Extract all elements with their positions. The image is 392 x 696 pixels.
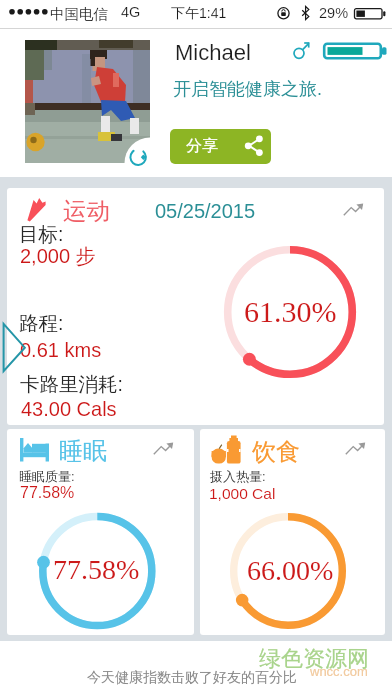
- staticText: 卡路里消耗:: [20, 372, 123, 397]
- staticText: 77.58%: [20, 484, 75, 502]
- staticText: 中国电信: [50, 5, 108, 23]
- staticText: 睡眠: [59, 436, 107, 466]
- staticText: 43.00 Cals: [21, 398, 117, 420]
- staticText: 绿色资源网: [259, 645, 369, 673]
- staticText: Michael: [175, 40, 251, 65]
- button[interactable]: 饮食: [200, 429, 385, 635]
- staticText: 77.58%: [53, 554, 140, 585]
- staticText: 目标:: [19, 222, 64, 247]
- staticText: 0.61 kms: [20, 339, 102, 361]
- staticText: 摄入热量:: [210, 468, 266, 484]
- staticText: 66.00%: [247, 555, 334, 586]
- button[interactable]: 分享: [170, 129, 271, 164]
- staticText: wncc.com: [310, 664, 368, 679]
- button[interactable]: Refresh: [128, 147, 149, 168]
- staticText: 29%: [319, 5, 349, 21]
- staticText: 路程:: [19, 311, 64, 336]
- staticText: 1,000 Cal: [209, 485, 276, 502]
- staticText: 今天健康指数击败了好友的百分比: [87, 669, 297, 687]
- staticText: 05/25/2015: [155, 200, 256, 222]
- staticText: 分享: [186, 136, 218, 156]
- staticText: 运动: [63, 196, 110, 226]
- staticText: 61.30%: [244, 295, 337, 328]
- staticText: 饮食: [252, 437, 300, 467]
- button[interactable]: 运动: [7, 188, 384, 425]
- staticText: 4G: [121, 4, 141, 20]
- staticText: 开启智能健康之旅.: [173, 78, 323, 101]
- staticText: 下午1:41: [171, 5, 227, 23]
- staticText: 2,000 步: [20, 244, 96, 269]
- staticText: 睡眠质量:: [19, 468, 75, 484]
- button[interactable]: 睡眠: [7, 429, 194, 635]
